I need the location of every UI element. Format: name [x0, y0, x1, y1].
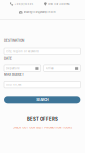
button[interactable]: Departure — [4, 65, 41, 71]
staticText: Departure — [6, 67, 20, 70]
button[interactable]: +49(0)12345 — [10, 2, 33, 6]
staticText: USD XX,xxx — [6, 83, 21, 86]
button[interactable]: Arrival — [44, 65, 80, 71]
button[interactable]: amazingtours@example.com — [19, 10, 56, 14]
staticText: Arrival — [46, 67, 54, 70]
staticText: SEARCH — [36, 98, 48, 102]
button[interactable]: City, region or keyword — [4, 48, 80, 55]
button[interactable]: Find our Address — [44, 2, 69, 6]
staticText: CHECK OUT OUR BEST PROMOTION TOURS — [12, 126, 72, 129]
staticText: City, region or keyword — [6, 50, 39, 53]
staticText: +49(0)12345 — [14, 2, 33, 6]
staticText: DATE — [4, 57, 12, 60]
staticText: BEST OFFERS — [27, 116, 58, 122]
button[interactable]: SEARCH — [4, 96, 80, 103]
staticText: DESTINATION — [4, 39, 24, 42]
staticText: Find our Address — [48, 2, 69, 6]
button[interactable]: USD XX,xxx — [4, 81, 80, 88]
staticText: MAX BUDGET — [4, 73, 24, 76]
staticText: amazingtours@example.com — [24, 11, 56, 14]
